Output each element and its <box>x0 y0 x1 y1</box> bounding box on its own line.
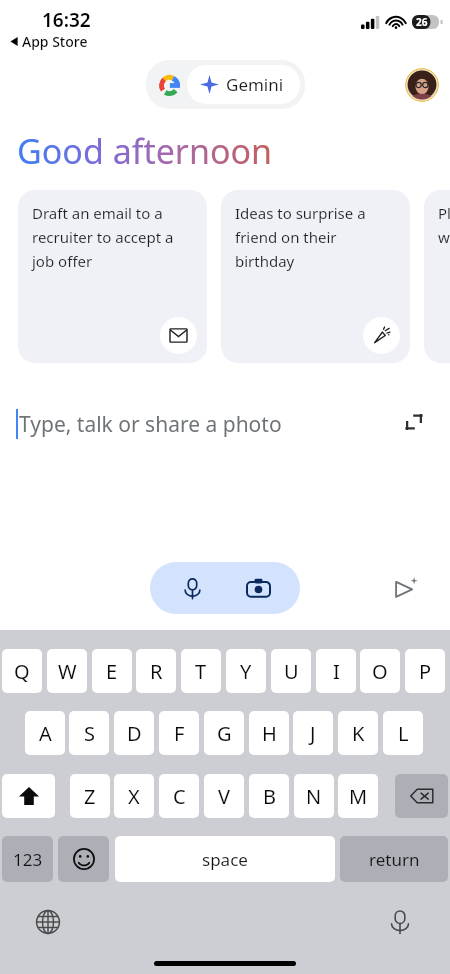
staticText: X <box>128 783 140 810</box>
button[interactable]: Dictation <box>378 900 422 944</box>
staticText: K <box>352 720 365 747</box>
staticText: Z <box>84 783 96 810</box>
button[interactable]: Voice input <box>150 562 300 614</box>
staticText: Good afternoon <box>17 128 273 174</box>
staticText: 16:32 <box>42 7 91 33</box>
staticText: 26 <box>416 15 428 29</box>
staticText: U <box>284 658 299 685</box>
button[interactable]: Voice input <box>168 564 216 612</box>
staticText: G <box>217 720 232 747</box>
staticText: App Store <box>22 32 88 51</box>
staticText: O <box>372 658 388 685</box>
button[interactable]: Account profile <box>405 68 439 102</box>
staticText: C <box>173 783 186 810</box>
button[interactable]: L <box>383 711 423 755</box>
button[interactable]: O <box>360 649 400 693</box>
staticText: A <box>39 720 52 747</box>
staticText: W <box>58 658 77 685</box>
button[interactable]: E <box>92 649 132 693</box>
button[interactable]: J <box>293 711 333 755</box>
button[interactable]: Camera <box>234 564 282 612</box>
staticText: Gemini <box>226 73 284 96</box>
staticText: P <box>419 658 432 685</box>
button[interactable]: Shift <box>2 774 55 818</box>
button[interactable]: Plan a trip with friends <box>424 190 450 363</box>
button[interactable]: Q <box>2 649 42 693</box>
button[interactable]: Draft an email to a recruiter to accept … <box>18 190 207 363</box>
staticText: J <box>310 720 316 747</box>
button[interactable]: Switch keyboard language <box>26 900 70 944</box>
button[interactable]: V <box>204 774 244 818</box>
button[interactable]: I <box>316 649 356 693</box>
staticText: F <box>174 720 185 747</box>
staticText: Ideas to surprise a friend on their birt… <box>235 203 366 271</box>
staticText: Q <box>14 658 30 685</box>
staticText: 123 <box>13 848 43 871</box>
button[interactable]: R <box>136 649 176 693</box>
button[interactable]: M <box>338 774 378 818</box>
button[interactable]: space <box>115 836 335 882</box>
button[interactable]: K <box>338 711 378 755</box>
button[interactable]: P <box>405 649 445 693</box>
staticText: N <box>306 783 322 810</box>
button[interactable]: X <box>114 774 154 818</box>
staticText: B <box>263 783 276 810</box>
button[interactable]: Gemini <box>187 65 300 104</box>
button[interactable]: C <box>159 774 199 818</box>
staticText: S <box>84 720 95 747</box>
button[interactable]: Expand input <box>394 402 434 442</box>
button[interactable]: Type, talk or share a photo <box>16 404 386 444</box>
button[interactable]: Y <box>226 649 266 693</box>
staticText: M <box>349 783 368 810</box>
button[interactable]: F <box>159 711 199 755</box>
button[interactable]: Z <box>70 774 110 818</box>
button[interactable]: return <box>340 836 448 882</box>
staticText: space <box>202 848 248 871</box>
staticText: Draft an email to a recruiter to accept … <box>32 203 174 271</box>
button[interactable]: Emoji <box>58 836 109 882</box>
staticText: H <box>262 720 277 747</box>
staticText: Type, talk or share a photo <box>19 410 282 439</box>
button[interactable]: H <box>249 711 289 755</box>
staticText: D <box>127 720 142 747</box>
button[interactable]: Backspace <box>395 774 448 818</box>
staticText: T <box>195 658 207 685</box>
staticText: R <box>150 658 163 685</box>
staticText: I <box>333 658 340 685</box>
button[interactable]: U <box>271 649 311 693</box>
button[interactable]: A <box>25 711 65 755</box>
button[interactable]: Google Search <box>146 60 305 109</box>
staticText: Plan a trip with friends <box>438 203 450 247</box>
staticText: E <box>106 658 118 685</box>
staticText: L <box>398 720 409 747</box>
button[interactable]: 123 <box>2 836 53 882</box>
button[interactable]: Send <box>384 566 428 610</box>
staticText: return <box>369 848 420 871</box>
button[interactable]: G <box>204 711 244 755</box>
button[interactable]: B <box>249 774 289 818</box>
button[interactable]: W <box>47 649 87 693</box>
button[interactable]: N <box>294 774 334 818</box>
button[interactable]: App Store <box>10 32 88 51</box>
button[interactable]: Google Search <box>151 67 187 103</box>
button[interactable]: T <box>181 649 221 693</box>
staticText: Y <box>240 658 252 685</box>
button[interactable]: S <box>69 711 109 755</box>
button[interactable]: D <box>114 711 154 755</box>
staticText: V <box>218 783 230 810</box>
button[interactable]: Ideas to surprise a friend on their birt… <box>221 190 410 363</box>
